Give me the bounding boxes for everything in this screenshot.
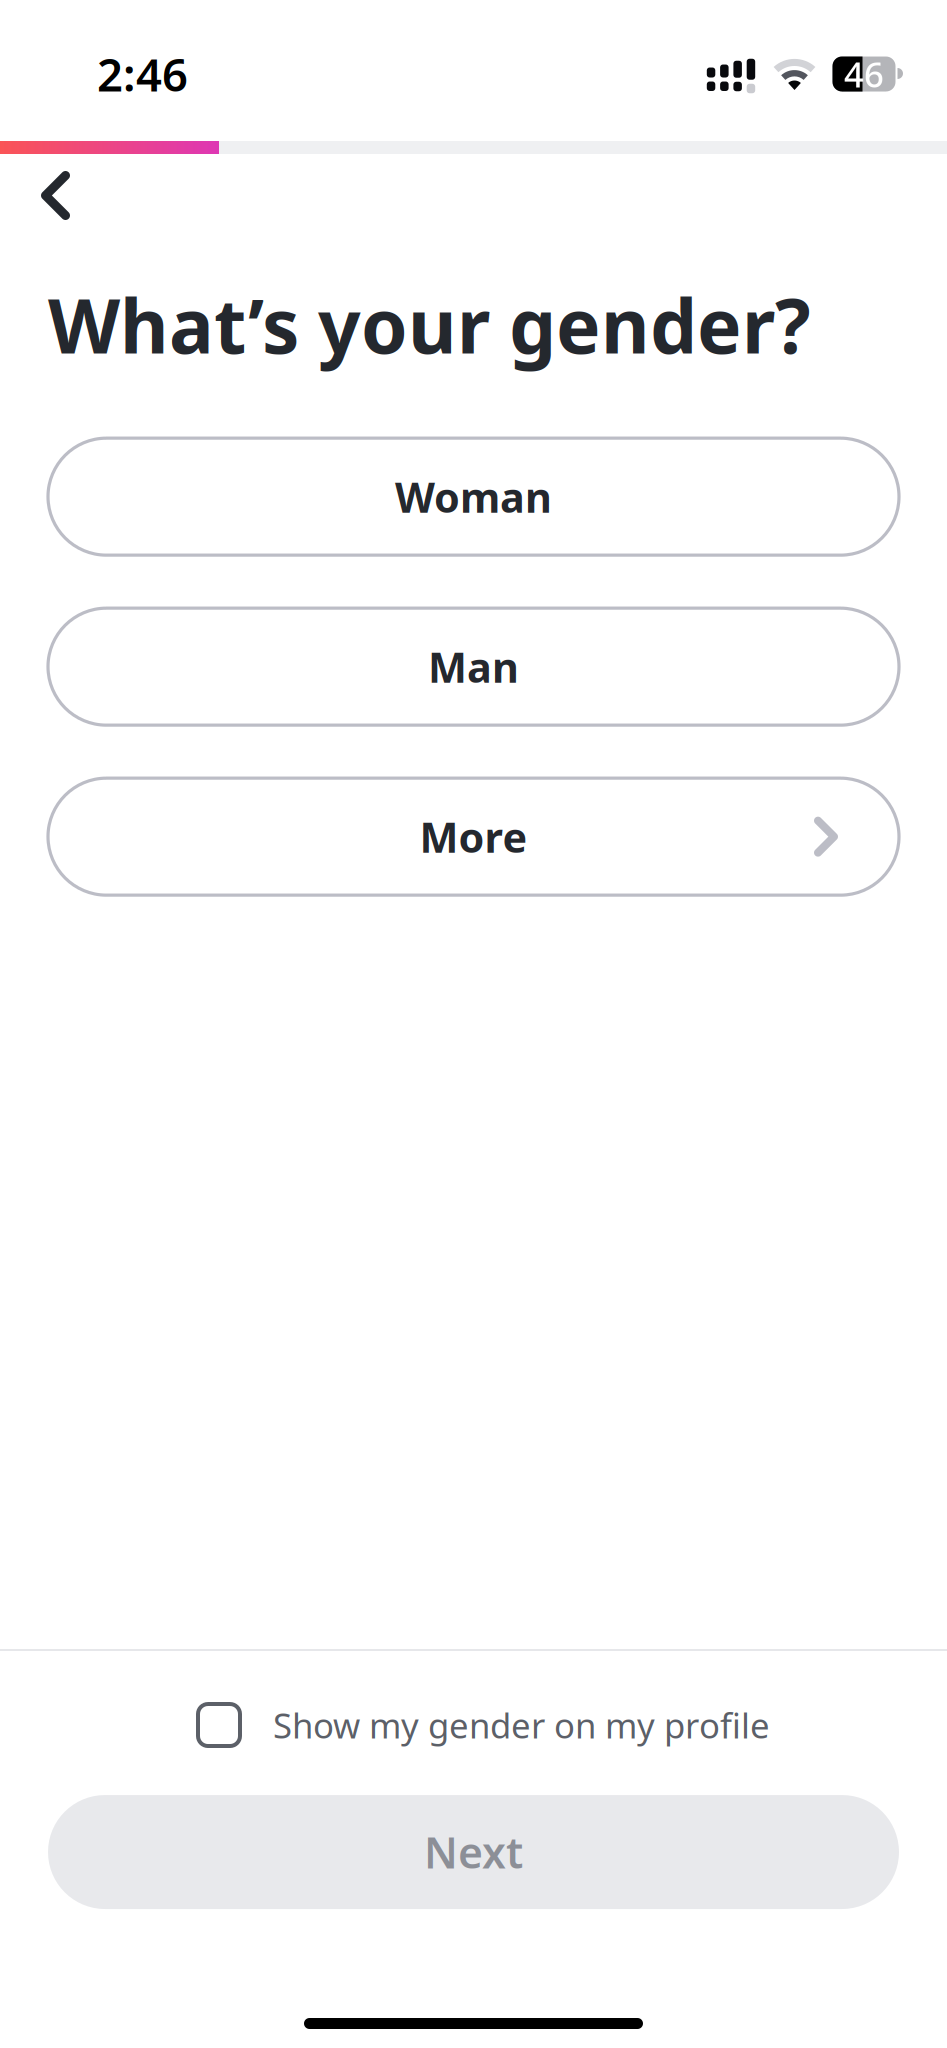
staticText: 46 xyxy=(844,51,884,97)
button[interactable]: Back xyxy=(0,154,98,237)
button[interactable]: More xyxy=(48,778,899,895)
staticText: Show my gender on my profile xyxy=(273,1702,770,1748)
button[interactable]: Show my gender on my profile xyxy=(177,1651,770,1795)
staticText: 2:46 xyxy=(97,44,188,104)
button[interactable]: Man xyxy=(48,608,899,725)
staticText: Woman xyxy=(395,469,552,524)
staticText: Next xyxy=(424,1824,523,1880)
button[interactable]: Woman xyxy=(48,438,899,555)
staticText: More xyxy=(419,809,527,864)
button[interactable]: Next xyxy=(48,1795,899,1909)
staticText: Man xyxy=(428,639,519,694)
staticText: What’s your gender? xyxy=(48,275,811,374)
